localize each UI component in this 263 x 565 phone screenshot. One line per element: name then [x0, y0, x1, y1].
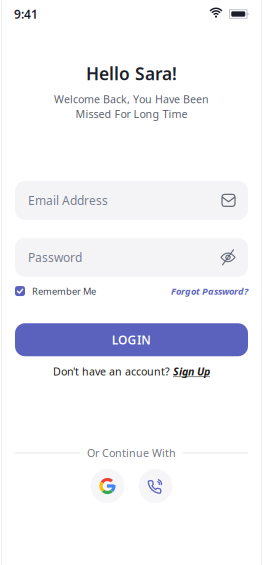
staticText: Forgot Password?: [171, 285, 248, 297]
staticText: LOGIN: [112, 332, 151, 348]
staticText: Password: [28, 249, 82, 265]
staticText: Remember Me: [32, 285, 96, 297]
staticText: 9:41: [14, 6, 38, 22]
staticText: Email Address: [28, 192, 108, 208]
button[interactable]: LOGIN: [15, 323, 248, 356]
button[interactable]: Continue with Google: [90, 469, 124, 503]
button[interactable]: Forgot Password?: [171, 285, 248, 297]
button[interactable]: Don't have an account? Sign Up: [53, 364, 210, 378]
button[interactable]: Password: [15, 238, 248, 277]
button[interactable]: Continue with Phone: [138, 469, 172, 503]
staticText: Welcome Back, You Have Been: [54, 92, 209, 106]
staticText: Or Continue With: [87, 446, 176, 460]
staticText: Missed For Long Time: [75, 107, 187, 121]
button[interactable]: Email Address: [15, 181, 248, 220]
button[interactable]: Remember Me: [15, 285, 96, 297]
staticText: Hello Sara!: [86, 62, 177, 85]
staticText: Don't have an account? Sign Up: [53, 364, 210, 378]
